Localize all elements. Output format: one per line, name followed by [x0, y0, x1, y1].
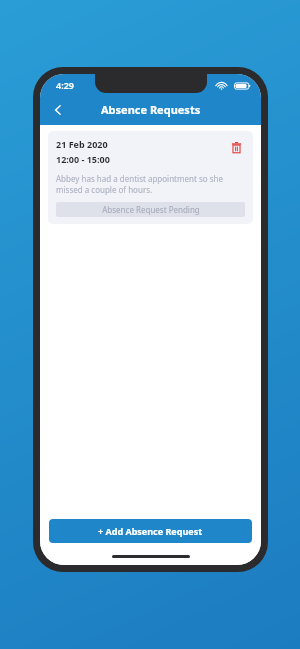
button[interactable]: Delete — [227, 138, 245, 156]
staticText: 12:00 - 15:00 — [56, 153, 110, 165]
button[interactable]: Back — [46, 98, 70, 122]
staticText: Abbey has had a dentist appointment so s… — [56, 173, 245, 195]
staticText: + Add Absence Request — [98, 525, 203, 537]
button[interactable]: + Add Absence Request — [49, 519, 252, 543]
staticText: Absence Request Pending — [102, 204, 200, 215]
staticText: Absence Requests — [101, 102, 201, 117]
button[interactable]: 21 Feb 2020 — [48, 131, 253, 224]
staticText: 21 Feb 2020 — [56, 138, 108, 150]
staticText: 4:29 — [56, 79, 74, 91]
